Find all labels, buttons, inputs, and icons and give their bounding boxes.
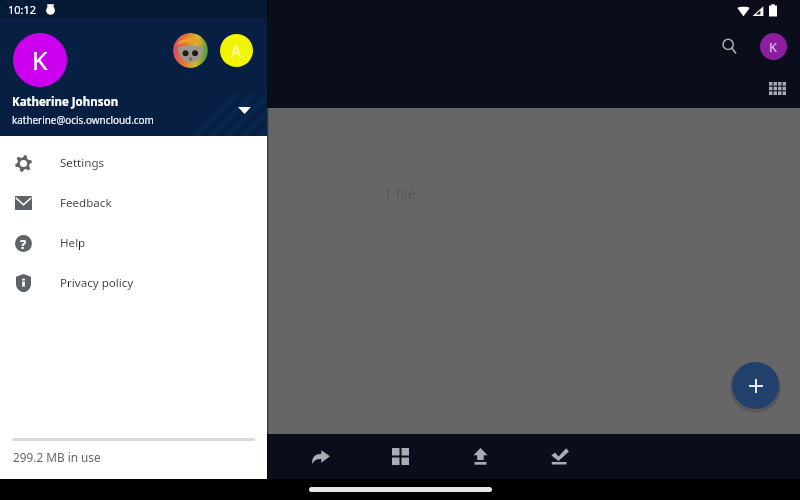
staticText: Feedback <box>60 195 112 211</box>
staticText: Privacy policy <box>60 275 134 291</box>
button[interactable]: Share <box>298 434 342 479</box>
staticText: Settings <box>60 155 105 171</box>
button[interactable]: Account A <box>220 34 253 67</box>
button[interactable]: Switch view <box>765 76 789 100</box>
staticText: A <box>231 40 242 62</box>
staticText: 1 file <box>384 184 416 203</box>
button[interactable]: ? <box>0 223 267 263</box>
button[interactable]: Select <box>538 434 582 479</box>
button[interactable]: Feedback <box>0 183 267 223</box>
staticText: Help <box>60 235 86 251</box>
button[interactable]: Switch grid view <box>378 434 422 479</box>
staticText: 299.2 MB in use <box>13 449 101 465</box>
button[interactable]: Settings <box>0 143 267 183</box>
button[interactable]: Account 2 <box>173 33 208 68</box>
button[interactable]: Current account Katherine Johnson <box>13 33 67 87</box>
button[interactable]: Upload <box>458 434 502 479</box>
button[interactable]: Search <box>712 29 746 63</box>
button[interactable]: Account <box>760 33 787 60</box>
staticText: katherine@ocis.owncloud.com <box>12 113 154 126</box>
staticText: ? <box>20 235 27 252</box>
staticText: K <box>32 43 48 77</box>
staticText: Katherine Johnson <box>12 94 119 110</box>
staticText: K <box>769 38 778 56</box>
button[interactable]: Privacy policy <box>0 263 267 303</box>
button[interactable]: Add <box>732 362 779 409</box>
staticText: 10:12 <box>8 2 37 17</box>
button[interactable]: Expand accounts <box>232 98 256 122</box>
